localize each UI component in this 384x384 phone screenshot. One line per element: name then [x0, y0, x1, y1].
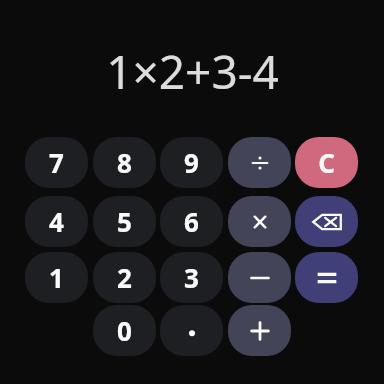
- button[interactable]: 2: [93, 252, 156, 303]
- button[interactable]: 5: [93, 196, 156, 247]
- staticText: C: [318, 145, 335, 180]
- button[interactable]: Backspace: [295, 196, 358, 247]
- staticText: 9: [184, 145, 199, 180]
- staticText: 3: [184, 260, 199, 295]
- button[interactable]: 6: [160, 196, 223, 247]
- button[interactable]: Minus: [228, 252, 291, 303]
- staticText: 1×2+3-4: [106, 40, 279, 103]
- button[interactable]: Multiply: [228, 196, 291, 247]
- staticText: 5: [117, 204, 132, 239]
- staticText: 8: [117, 145, 132, 180]
- button[interactable]: 7: [25, 137, 88, 188]
- button[interactable]: C: [295, 137, 358, 188]
- button[interactable]: 9: [160, 137, 223, 188]
- button[interactable]: 4: [25, 196, 88, 247]
- button[interactable]: Equals: [295, 252, 358, 303]
- button[interactable]: Decimal point: [160, 305, 223, 356]
- button[interactable]: 1: [25, 252, 88, 303]
- staticText: 1: [49, 260, 64, 295]
- button[interactable]: 8: [93, 137, 156, 188]
- button[interactable]: 3: [160, 252, 223, 303]
- staticText: 2: [117, 260, 132, 295]
- staticText: 7: [49, 145, 64, 180]
- staticText: 0: [117, 313, 132, 348]
- staticText: 4: [49, 204, 64, 239]
- button[interactable]: Divide: [228, 137, 291, 188]
- button[interactable]: 0: [93, 305, 156, 356]
- staticText: 6: [184, 204, 199, 239]
- button[interactable]: Plus: [228, 305, 291, 356]
